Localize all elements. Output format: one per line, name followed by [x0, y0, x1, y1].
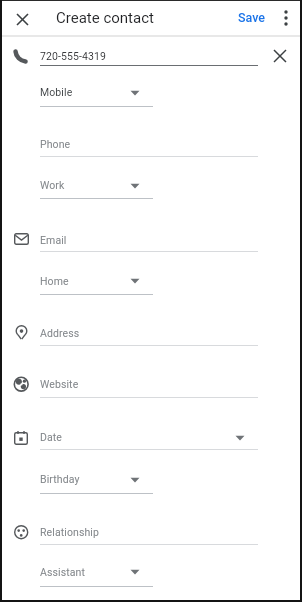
staticText: Email	[40, 234, 67, 246]
staticText: Date	[40, 431, 63, 443]
button[interactable]: Save	[238, 5, 266, 30]
staticText: Website	[40, 378, 79, 390]
staticText: Home	[40, 275, 69, 287]
staticText: Save	[238, 10, 266, 25]
staticText: Mobile	[40, 86, 73, 98]
button[interactable]: Website	[40, 373, 240, 395]
staticText: Address	[40, 327, 80, 339]
button[interactable]: Home	[40, 270, 240, 292]
staticText: 720-555-4319	[40, 50, 107, 62]
button[interactable]: Address	[40, 322, 240, 344]
staticText: Create contact	[56, 9, 154, 27]
staticText: Birthday	[40, 473, 80, 485]
button[interactable]	[269, 45, 291, 67]
staticText: Work	[40, 179, 65, 191]
staticText: Assistant	[40, 566, 85, 578]
button[interactable]: Relationship	[40, 521, 240, 543]
button[interactable]: 720-555-4319	[40, 45, 240, 67]
button[interactable]: Date	[40, 426, 240, 448]
staticText: Relationship	[40, 526, 99, 538]
button[interactable]: Email	[40, 229, 240, 251]
staticText: Phone	[40, 138, 71, 150]
button[interactable]	[277, 3, 294, 32]
button[interactable]: Phone	[40, 133, 240, 155]
button[interactable]: Birthday	[40, 468, 240, 490]
button[interactable]: Mobile	[40, 81, 240, 103]
button[interactable]: Work	[40, 174, 240, 196]
button[interactable]	[9, 6, 36, 33]
button[interactable]: Assistant	[40, 561, 240, 583]
